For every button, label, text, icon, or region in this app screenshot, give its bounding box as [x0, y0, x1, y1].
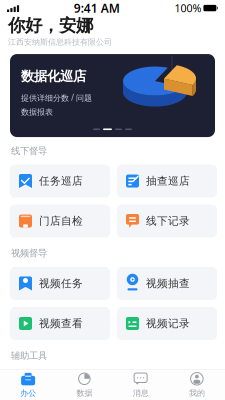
- staticText: 视频督导: [11, 247, 47, 259]
- staticText: 抽查巡店: [146, 174, 190, 188]
- staticText: 辅助工具: [11, 350, 47, 361]
- button[interactable]: 视频任务: [10, 267, 110, 300]
- staticText: 江西安纳斯信息科技有限公司: [8, 37, 112, 47]
- button[interactable]: 视频记录: [117, 307, 217, 340]
- staticText: 视频记录: [146, 317, 190, 330]
- button[interactable]: 办公: [0, 367, 56, 400]
- button[interactable]: 抽查巡店: [117, 164, 217, 197]
- staticText: 100%: [174, 1, 201, 15]
- staticText: 线下记录: [146, 214, 190, 228]
- button[interactable]: 任务巡店: [10, 164, 110, 197]
- staticText: 线下督导: [11, 145, 47, 157]
- staticText: 数据: [76, 388, 92, 398]
- button[interactable]: 消息: [112, 367, 169, 400]
- staticText: 视频查看: [39, 317, 83, 330]
- staticText: 9:41 AM: [74, 0, 120, 16]
- staticText: 数据化巡店: [21, 68, 86, 84]
- staticText: 数据报表: [21, 107, 53, 117]
- button[interactable]: 数据化巡店: [10, 54, 215, 137]
- button[interactable]: 我的: [169, 367, 225, 400]
- staticText: 我的: [189, 388, 205, 398]
- staticText: 视频抽查: [146, 277, 190, 290]
- staticText: 门店自检: [39, 214, 83, 228]
- staticText: 任务巡店: [39, 174, 83, 188]
- staticText: 视频任务: [39, 277, 83, 290]
- button[interactable]: 门店自检: [10, 204, 110, 237]
- button[interactable]: 视频查看: [10, 307, 110, 340]
- button[interactable]: 线下记录: [117, 204, 217, 237]
- button[interactable]: 数据: [56, 367, 112, 400]
- staticText: 提供详细分数 / 问题: [21, 92, 92, 103]
- staticText: 你好，安娜: [8, 15, 93, 36]
- staticText: 消息: [133, 388, 149, 398]
- staticText: 办公: [20, 388, 36, 398]
- button[interactable]: 视频抽查: [117, 267, 217, 300]
